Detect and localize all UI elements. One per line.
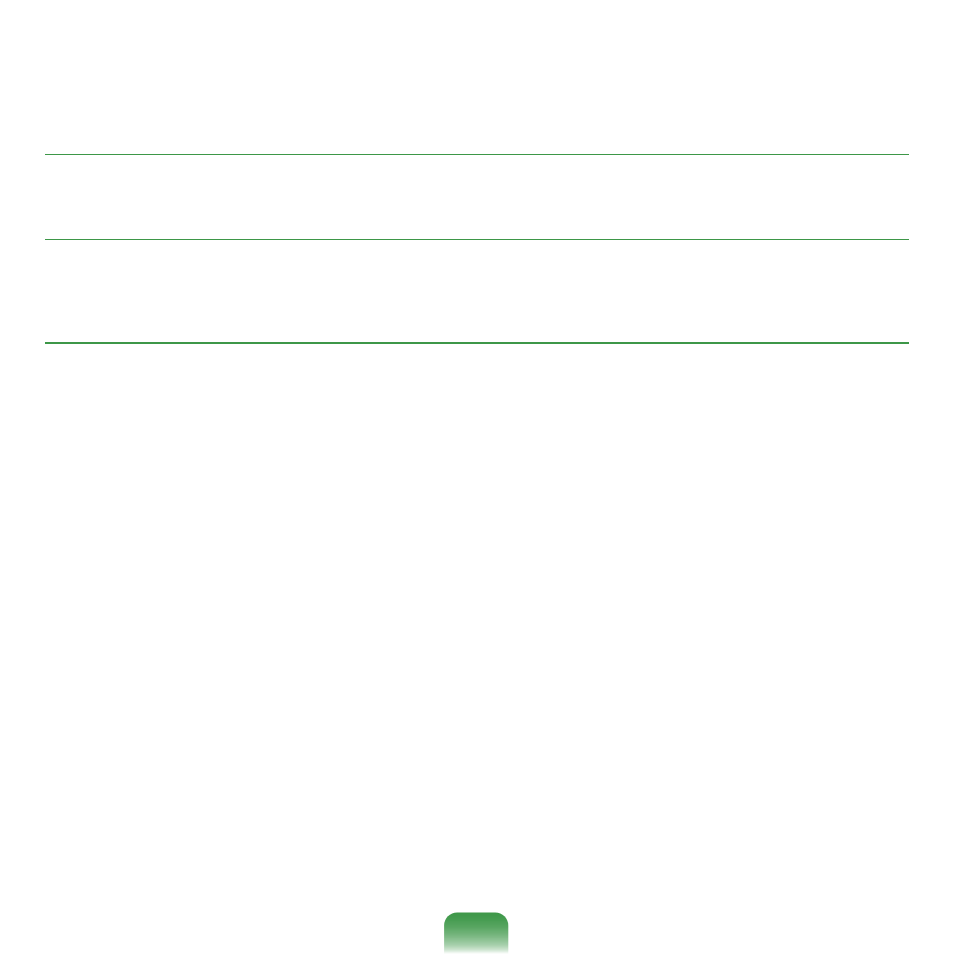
button[interactable]: Third entry [0,240,954,344]
button[interactable]: Second entry [0,155,954,240]
button[interactable]: Primary action [444,912,509,954]
button[interactable]: First entry [0,0,954,155]
